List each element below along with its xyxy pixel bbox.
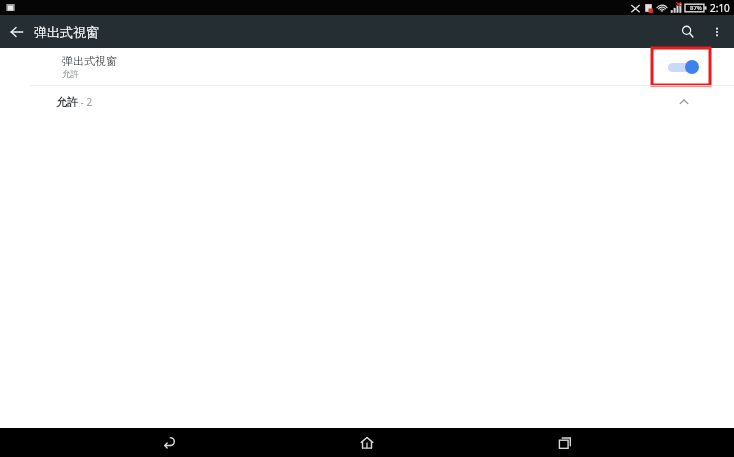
button[interactable]: Recent apps [536,428,594,457]
button[interactable]: Back [0,15,34,48]
button[interactable]: Home [338,428,396,457]
staticText: 2:10 [710,1,730,15]
staticText: 弹出式視窗 [34,24,99,40]
button[interactable]: Search [670,15,704,48]
button[interactable]: 允許 [0,86,734,118]
button[interactable]: More options [704,15,730,48]
staticText: 允許 [62,69,79,80]
staticText: - 2 [78,95,93,109]
staticText: 允許 [56,95,78,109]
staticText: 弹出式視窗 [62,54,117,68]
button[interactable]: Back [140,428,198,457]
staticText: 87% [690,4,702,12]
button[interactable]: Popup window toggle [663,57,699,77]
button[interactable]: 弹出式視窗 [0,48,734,85]
